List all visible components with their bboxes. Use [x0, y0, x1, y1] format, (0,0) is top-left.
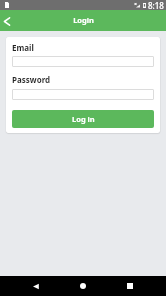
- button[interactable]: Recents: [120, 276, 140, 296]
- button[interactable]: Back: [27, 276, 47, 296]
- button[interactable]: Log in: [12, 110, 154, 128]
- staticText: Login: [73, 15, 94, 25]
- button[interactable]: [12, 56, 154, 67]
- staticText: Email: [12, 42, 34, 53]
- button[interactable]: Back: [0, 14, 14, 28]
- staticText: Password: [12, 74, 51, 85]
- staticText: 8:18: [148, 0, 164, 10]
- staticText: Log in: [72, 114, 95, 124]
- button[interactable]: Home: [73, 276, 93, 296]
- button[interactable]: [12, 89, 154, 100]
